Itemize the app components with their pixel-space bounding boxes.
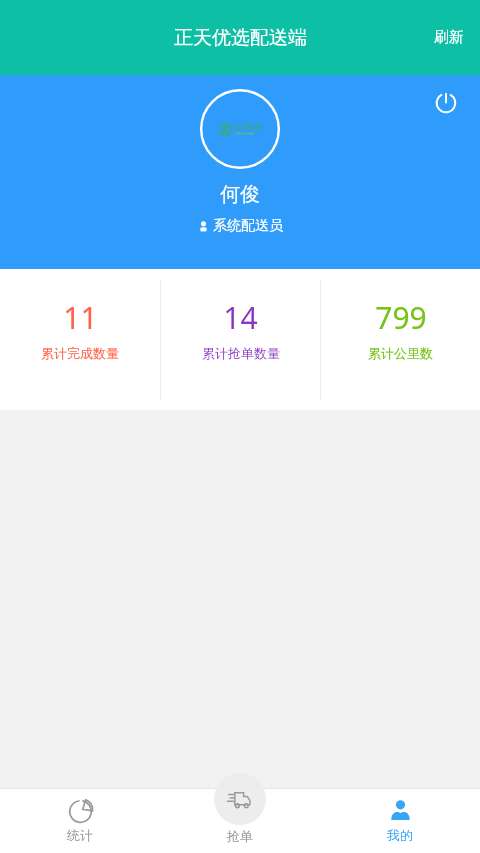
staticText: ZHENGTIAN xyxy=(234,131,254,136)
button[interactable]: 我的 xyxy=(320,788,480,853)
staticText: 累计抢单数量 xyxy=(202,345,280,361)
staticText: 统计 xyxy=(67,827,93,843)
button[interactable]: 14 xyxy=(161,269,320,410)
button[interactable]: 刷新 xyxy=(418,18,480,57)
button[interactable]: 799 xyxy=(321,269,480,410)
staticText: 抢单 xyxy=(227,828,253,844)
staticText: 14 xyxy=(223,297,258,338)
button[interactable]: 11 xyxy=(0,269,160,410)
staticText: 799 xyxy=(375,297,427,338)
staticText: 正天优选 xyxy=(234,122,262,131)
staticText: 系统配送员 xyxy=(213,217,283,235)
staticText: 11 xyxy=(63,297,98,338)
button[interactable]: Avatar xyxy=(200,89,280,169)
staticText: 我的 xyxy=(387,827,413,843)
button[interactable]: 统计 xyxy=(0,788,160,853)
staticText: 累计完成数量 xyxy=(41,345,119,361)
button[interactable]: Power / Logout xyxy=(424,81,468,125)
staticText: 何俊 xyxy=(220,182,260,207)
button[interactable]: 抢单 xyxy=(185,773,295,853)
staticText: 刷新 xyxy=(434,28,464,47)
staticText: 累计公里数 xyxy=(368,345,433,361)
staticText: 正天优选配送端 xyxy=(174,26,307,50)
